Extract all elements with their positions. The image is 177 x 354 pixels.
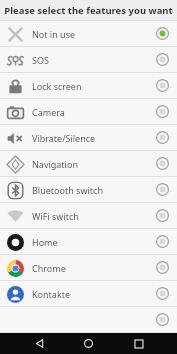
staticText: Bluetooth switch: [32, 184, 103, 196]
button[interactable]: Chrome: [0, 255, 177, 280]
staticText: Kontakte: [32, 288, 71, 300]
button[interactable]: WiFi switch: [0, 203, 177, 228]
button[interactable]: Camera: [0, 99, 177, 124]
button[interactable]: Not in use: [0, 21, 177, 46]
button[interactable]: [0, 307, 177, 332]
staticText: WiFi switch: [32, 210, 79, 222]
staticText: SOS: [32, 54, 49, 66]
staticText: Lock screen: [32, 80, 82, 92]
button[interactable]: Home: [78, 333, 99, 354]
button[interactable]: Bluetooth switch: [0, 177, 177, 202]
button[interactable]: Home: [0, 229, 177, 254]
button[interactable]: Kontakte: [0, 281, 177, 306]
staticText: Navigation: [32, 158, 78, 170]
staticText: Chrome: [32, 262, 66, 274]
staticText: Home: [32, 236, 58, 248]
button[interactable]: Back: [29, 333, 50, 354]
button[interactable]: SOS: [0, 47, 177, 72]
button[interactable]: Lock screen: [0, 73, 177, 98]
staticText: Camera: [32, 106, 65, 118]
staticText: Please select the features you want: [4, 4, 173, 17]
button[interactable]: Navigation: [0, 151, 177, 176]
button[interactable]: Vibrate/Silence: [0, 125, 177, 150]
button[interactable]: Recent apps: [128, 333, 149, 354]
staticText: Not in use: [32, 28, 76, 40]
staticText: Vibrate/Silence: [32, 132, 96, 144]
